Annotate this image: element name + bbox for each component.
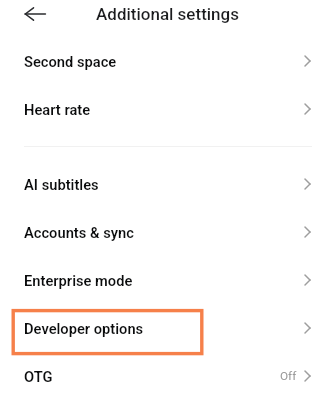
- staticText: Developer options: [24, 320, 144, 337]
- staticText: AI subtitles: [24, 176, 99, 193]
- button[interactable]: Accounts & sync: [0, 208, 335, 256]
- button[interactable]: Navigate up: [16, 0, 56, 28]
- button[interactable]: Developer options: [0, 304, 335, 352]
- button[interactable]: OTG: [0, 352, 335, 400]
- button[interactable]: Enterprise mode: [0, 256, 335, 304]
- button[interactable]: AI subtitles: [0, 160, 335, 208]
- staticText: Accounts & sync: [24, 224, 134, 241]
- staticText: Off: [280, 369, 297, 383]
- staticText: OTG: [24, 368, 53, 385]
- staticText: Second space: [24, 53, 117, 70]
- staticText: Heart rate: [24, 101, 91, 118]
- staticText: Additional settings: [96, 4, 239, 24]
- staticText: Enterprise mode: [24, 272, 133, 289]
- button[interactable]: Second space: [0, 37, 335, 85]
- button[interactable]: Heart rate: [0, 85, 335, 133]
